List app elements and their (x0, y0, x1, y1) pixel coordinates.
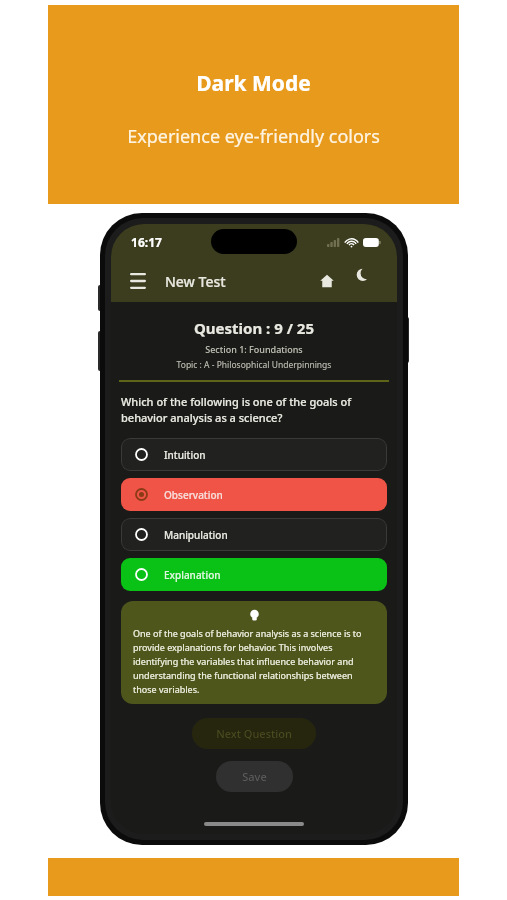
button[interactable]: Explanation (121, 558, 387, 591)
staticText: Next Question (216, 726, 292, 741)
staticText: Topic : A - Philosophical Underpinnings (111, 359, 397, 371)
staticText: Intuition (164, 448, 206, 462)
button[interactable]: Home (313, 267, 341, 295)
staticText: Manipulation (164, 528, 228, 542)
button[interactable]: Observation (121, 478, 387, 511)
staticText: Which of the following is one of the goa… (121, 394, 387, 426)
staticText: Explanation (164, 568, 221, 582)
button[interactable]: Intuition (121, 438, 387, 471)
staticText: Section 1: Foundations (111, 343, 397, 355)
staticText: Save (242, 769, 267, 784)
button[interactable]: Manipulation (121, 518, 387, 551)
button[interactable]: Next Question (192, 718, 316, 749)
button[interactable]: Save (216, 761, 293, 792)
button[interactable]: Toggle dark mode (355, 267, 383, 295)
staticText: Experience eye-friendly colors (127, 124, 380, 149)
button[interactable]: Open menu (125, 268, 151, 294)
staticText: Question : 9 / 25 (111, 318, 397, 338)
staticText: New Test (165, 272, 226, 291)
staticText: Observation (164, 488, 223, 502)
staticText: 16:17 (131, 234, 162, 250)
staticText: Dark Mode (196, 69, 311, 98)
staticText: One of the goals of behavior analysis as… (133, 627, 375, 696)
